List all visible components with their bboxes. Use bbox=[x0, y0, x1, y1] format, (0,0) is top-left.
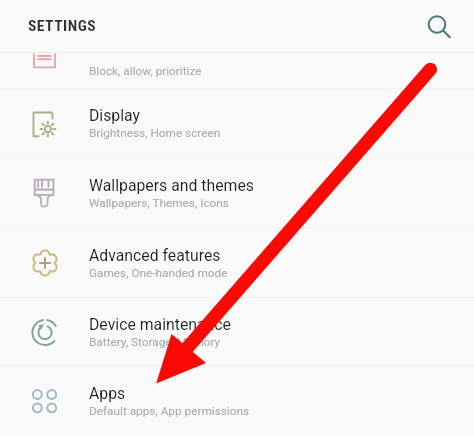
staticText: Wallpapers, Themes, Icons bbox=[89, 196, 229, 210]
staticText: Advanced features bbox=[89, 246, 221, 265]
staticText: Apps bbox=[89, 384, 126, 403]
staticText: SETTINGS bbox=[28, 17, 97, 35]
staticText: Device maintenance bbox=[89, 315, 231, 334]
button[interactable]: Advanced features bbox=[0, 228, 474, 298]
staticText: Battery, Storage, Memory bbox=[89, 335, 221, 349]
button[interactable]: Search bbox=[414, 1, 460, 47]
staticText: Block, allow, prioritize bbox=[89, 64, 202, 78]
staticText: Display bbox=[89, 106, 141, 125]
button[interactable]: Block, allow, prioritize bbox=[0, 53, 474, 89]
staticText: Games, One-handed mode bbox=[89, 266, 228, 280]
button[interactable]: Display bbox=[0, 89, 474, 157]
staticText: Default apps, App permissions bbox=[89, 404, 250, 418]
staticText: Wallpapers and themes bbox=[89, 176, 254, 195]
button[interactable]: Apps bbox=[0, 366, 474, 436]
button[interactable]: Device maintenance bbox=[0, 298, 474, 366]
staticText: Brightness, Home screen bbox=[89, 126, 221, 140]
button[interactable]: Wallpapers and themes bbox=[0, 157, 474, 228]
